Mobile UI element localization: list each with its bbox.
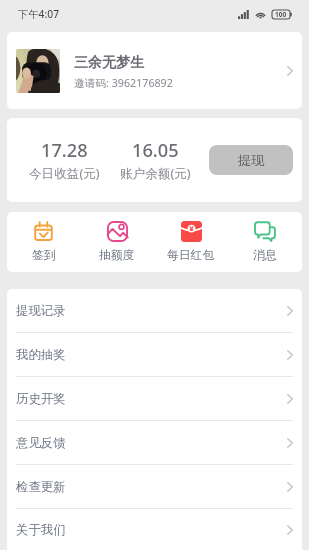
staticText: 我的抽奖 xyxy=(16,347,66,363)
staticText: 意见反馈 xyxy=(16,435,66,451)
staticText: 今日收益(元) xyxy=(29,165,100,182)
staticText: 历史开奖 xyxy=(16,391,66,407)
button[interactable]: 历史开奖 xyxy=(7,377,302,420)
button[interactable]: 关于我们 xyxy=(7,509,302,550)
staticText: 下午4:07 xyxy=(18,7,60,21)
staticText: 关于我们 xyxy=(16,522,66,538)
button[interactable]: 抽额度 xyxy=(80,212,154,272)
button[interactable]: 提现 xyxy=(209,145,293,175)
button[interactable]: 三余无梦生 xyxy=(7,32,302,109)
button[interactable]: 检查更新 xyxy=(7,465,302,508)
staticText: 抽额度 xyxy=(99,248,135,263)
staticText: 消息 xyxy=(253,248,277,263)
button[interactable]: 消息 xyxy=(228,212,302,272)
staticText: 签到 xyxy=(32,248,56,263)
staticText: 提现记录 xyxy=(16,303,66,319)
staticText: 16.05 xyxy=(132,138,179,163)
button[interactable]: 提现记录 xyxy=(7,289,302,332)
staticText: 提现 xyxy=(238,152,265,169)
staticText: 三余无梦生 xyxy=(74,54,144,72)
button[interactable]: 我的抽奖 xyxy=(7,333,302,376)
staticText: 17.28 xyxy=(41,138,88,163)
staticText: 邀请码: 3962176892 xyxy=(74,76,173,91)
staticText: 每日红包 xyxy=(167,248,215,263)
button[interactable]: 意见反馈 xyxy=(7,421,302,464)
button[interactable]: 签到 xyxy=(7,212,80,272)
staticText: 检查更新 xyxy=(16,479,66,495)
staticText: 100 xyxy=(275,10,287,19)
button[interactable]: 每日红包 xyxy=(154,212,228,272)
staticText: 账户余额(元) xyxy=(120,165,191,182)
